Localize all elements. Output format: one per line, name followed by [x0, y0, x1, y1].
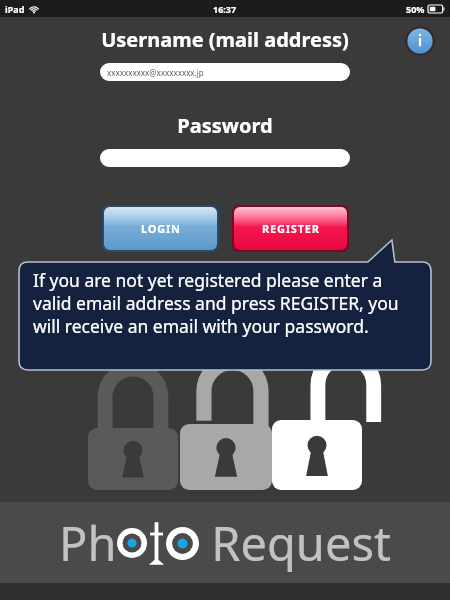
button[interactable]: Information — [405, 26, 435, 56]
staticText: LOGIN — [141, 221, 181, 236]
staticText: Password — [0, 112, 450, 139]
staticText: REGISTER — [262, 221, 320, 236]
button[interactable]: xxxxxxxxxx@xxxxxxxxx.jp — [100, 63, 350, 81]
button[interactable]: Ph — [59, 511, 391, 575]
staticText: If you are not yet registered please ent… — [33, 268, 420, 338]
button[interactable]: If you are not yet registered please ent… — [19, 240, 431, 370]
staticText: 16:37 — [213, 3, 237, 15]
staticText: iPad — [5, 3, 25, 15]
staticText: Request — [199, 511, 391, 575]
staticText: 50% — [406, 3, 425, 15]
button[interactable]: LOGIN — [104, 207, 217, 250]
button[interactable]: REGISTER — [234, 207, 347, 250]
button[interactable] — [100, 149, 350, 167]
staticText: Username (mail address) — [101, 26, 349, 53]
staticText: xxxxxxxxxx@xxxxxxxxx.jp — [107, 67, 204, 78]
staticText: Ph — [59, 511, 117, 575]
